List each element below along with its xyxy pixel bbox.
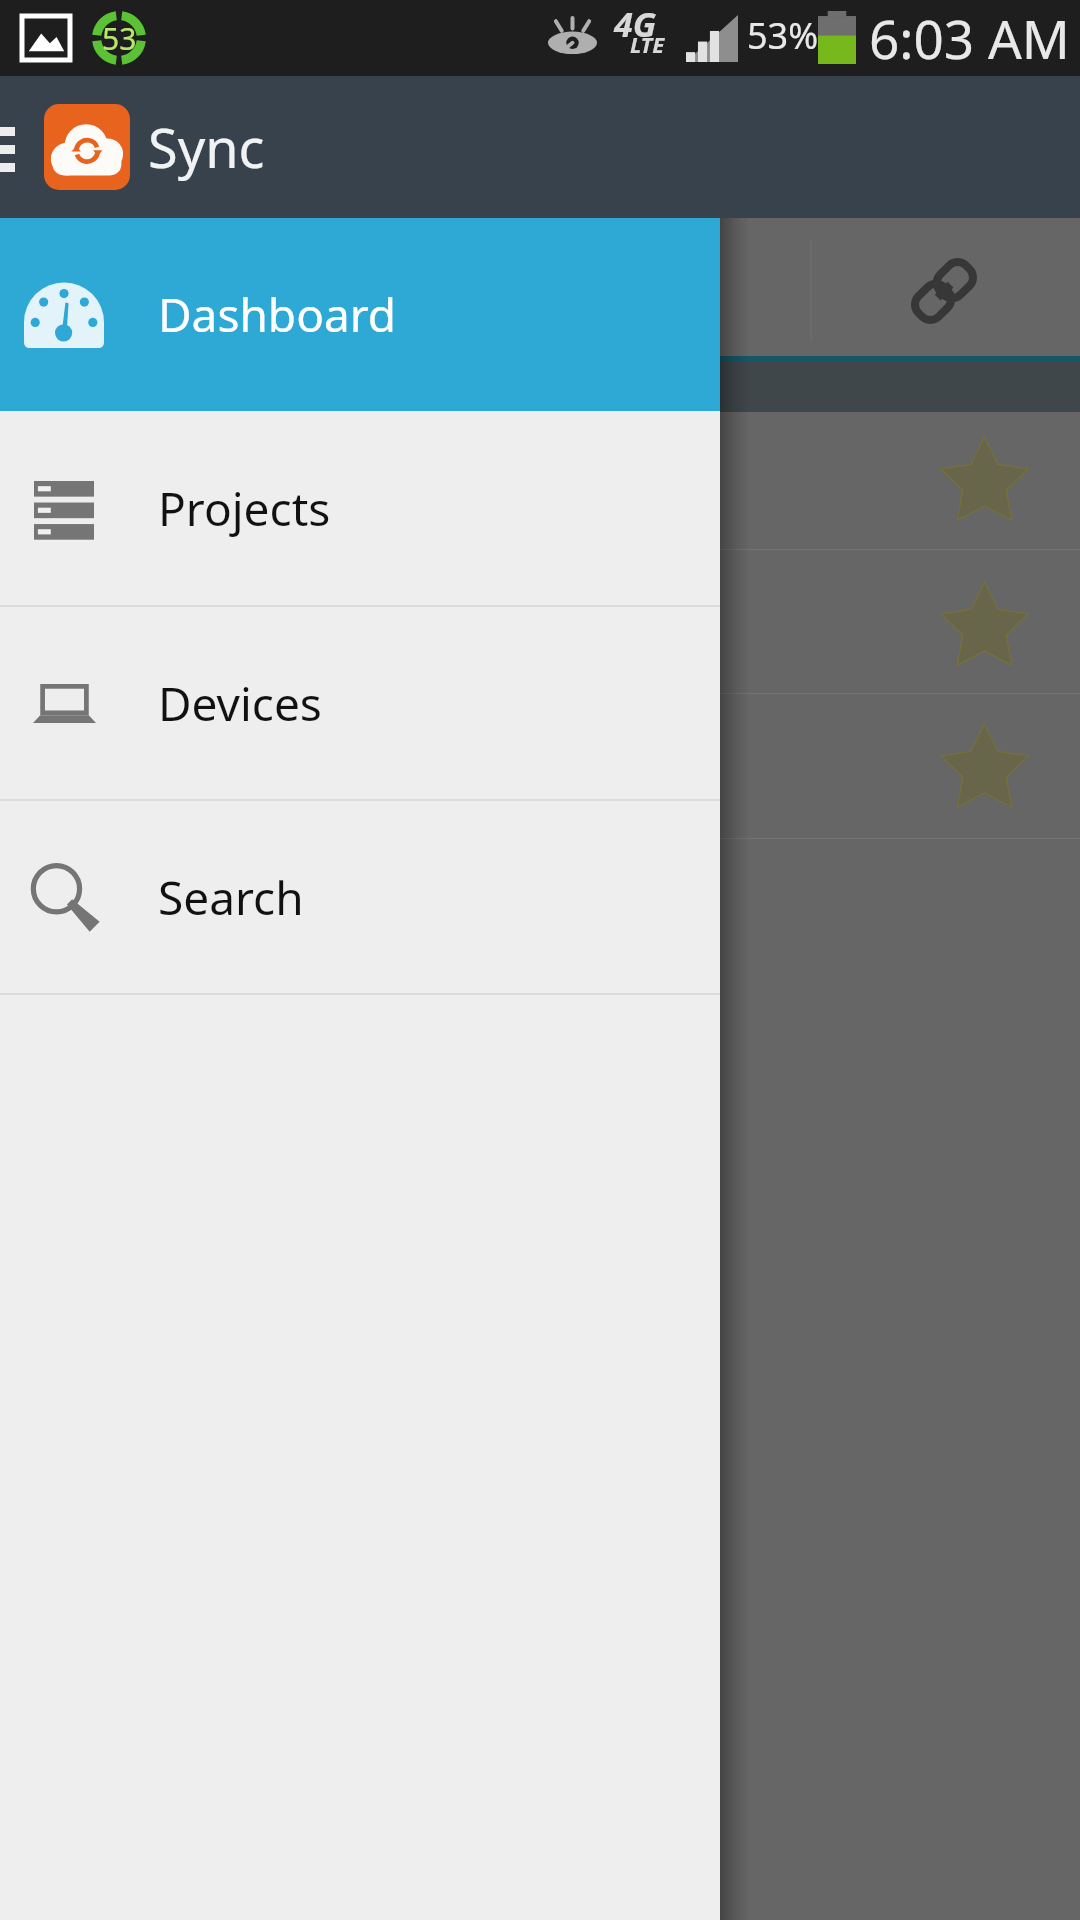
button[interactable] (0, 550, 1080, 693)
staticText: Search (158, 866, 304, 929)
staticText: Sync (148, 110, 265, 184)
staticText: 6:03 AM (869, 2, 1070, 74)
staticText: 4G (614, 1, 657, 47)
button[interactable]: Devices (0, 607, 720, 799)
button[interactable] (0, 694, 1080, 838)
staticText: Projects (158, 477, 331, 540)
button[interactable]: Dashboard (0, 218, 720, 411)
button[interactable]: Search (0, 801, 720, 993)
staticText: 53% (747, 11, 819, 60)
button[interactable]: Projects (0, 411, 720, 605)
button[interactable]: Favourite (940, 437, 1029, 529)
button[interactable] (0, 412, 1080, 549)
staticText: Devices (158, 672, 322, 735)
button[interactable]: Favourite (940, 724, 1029, 816)
staticText: 53 (102, 18, 137, 59)
staticText: LTE (630, 29, 665, 59)
button[interactable]: Favourite (940, 582, 1029, 674)
button[interactable]: Link (909, 256, 979, 326)
staticText: Dashboard (158, 283, 397, 346)
button[interactable]: Open navigation drawer (0, 105, 20, 189)
